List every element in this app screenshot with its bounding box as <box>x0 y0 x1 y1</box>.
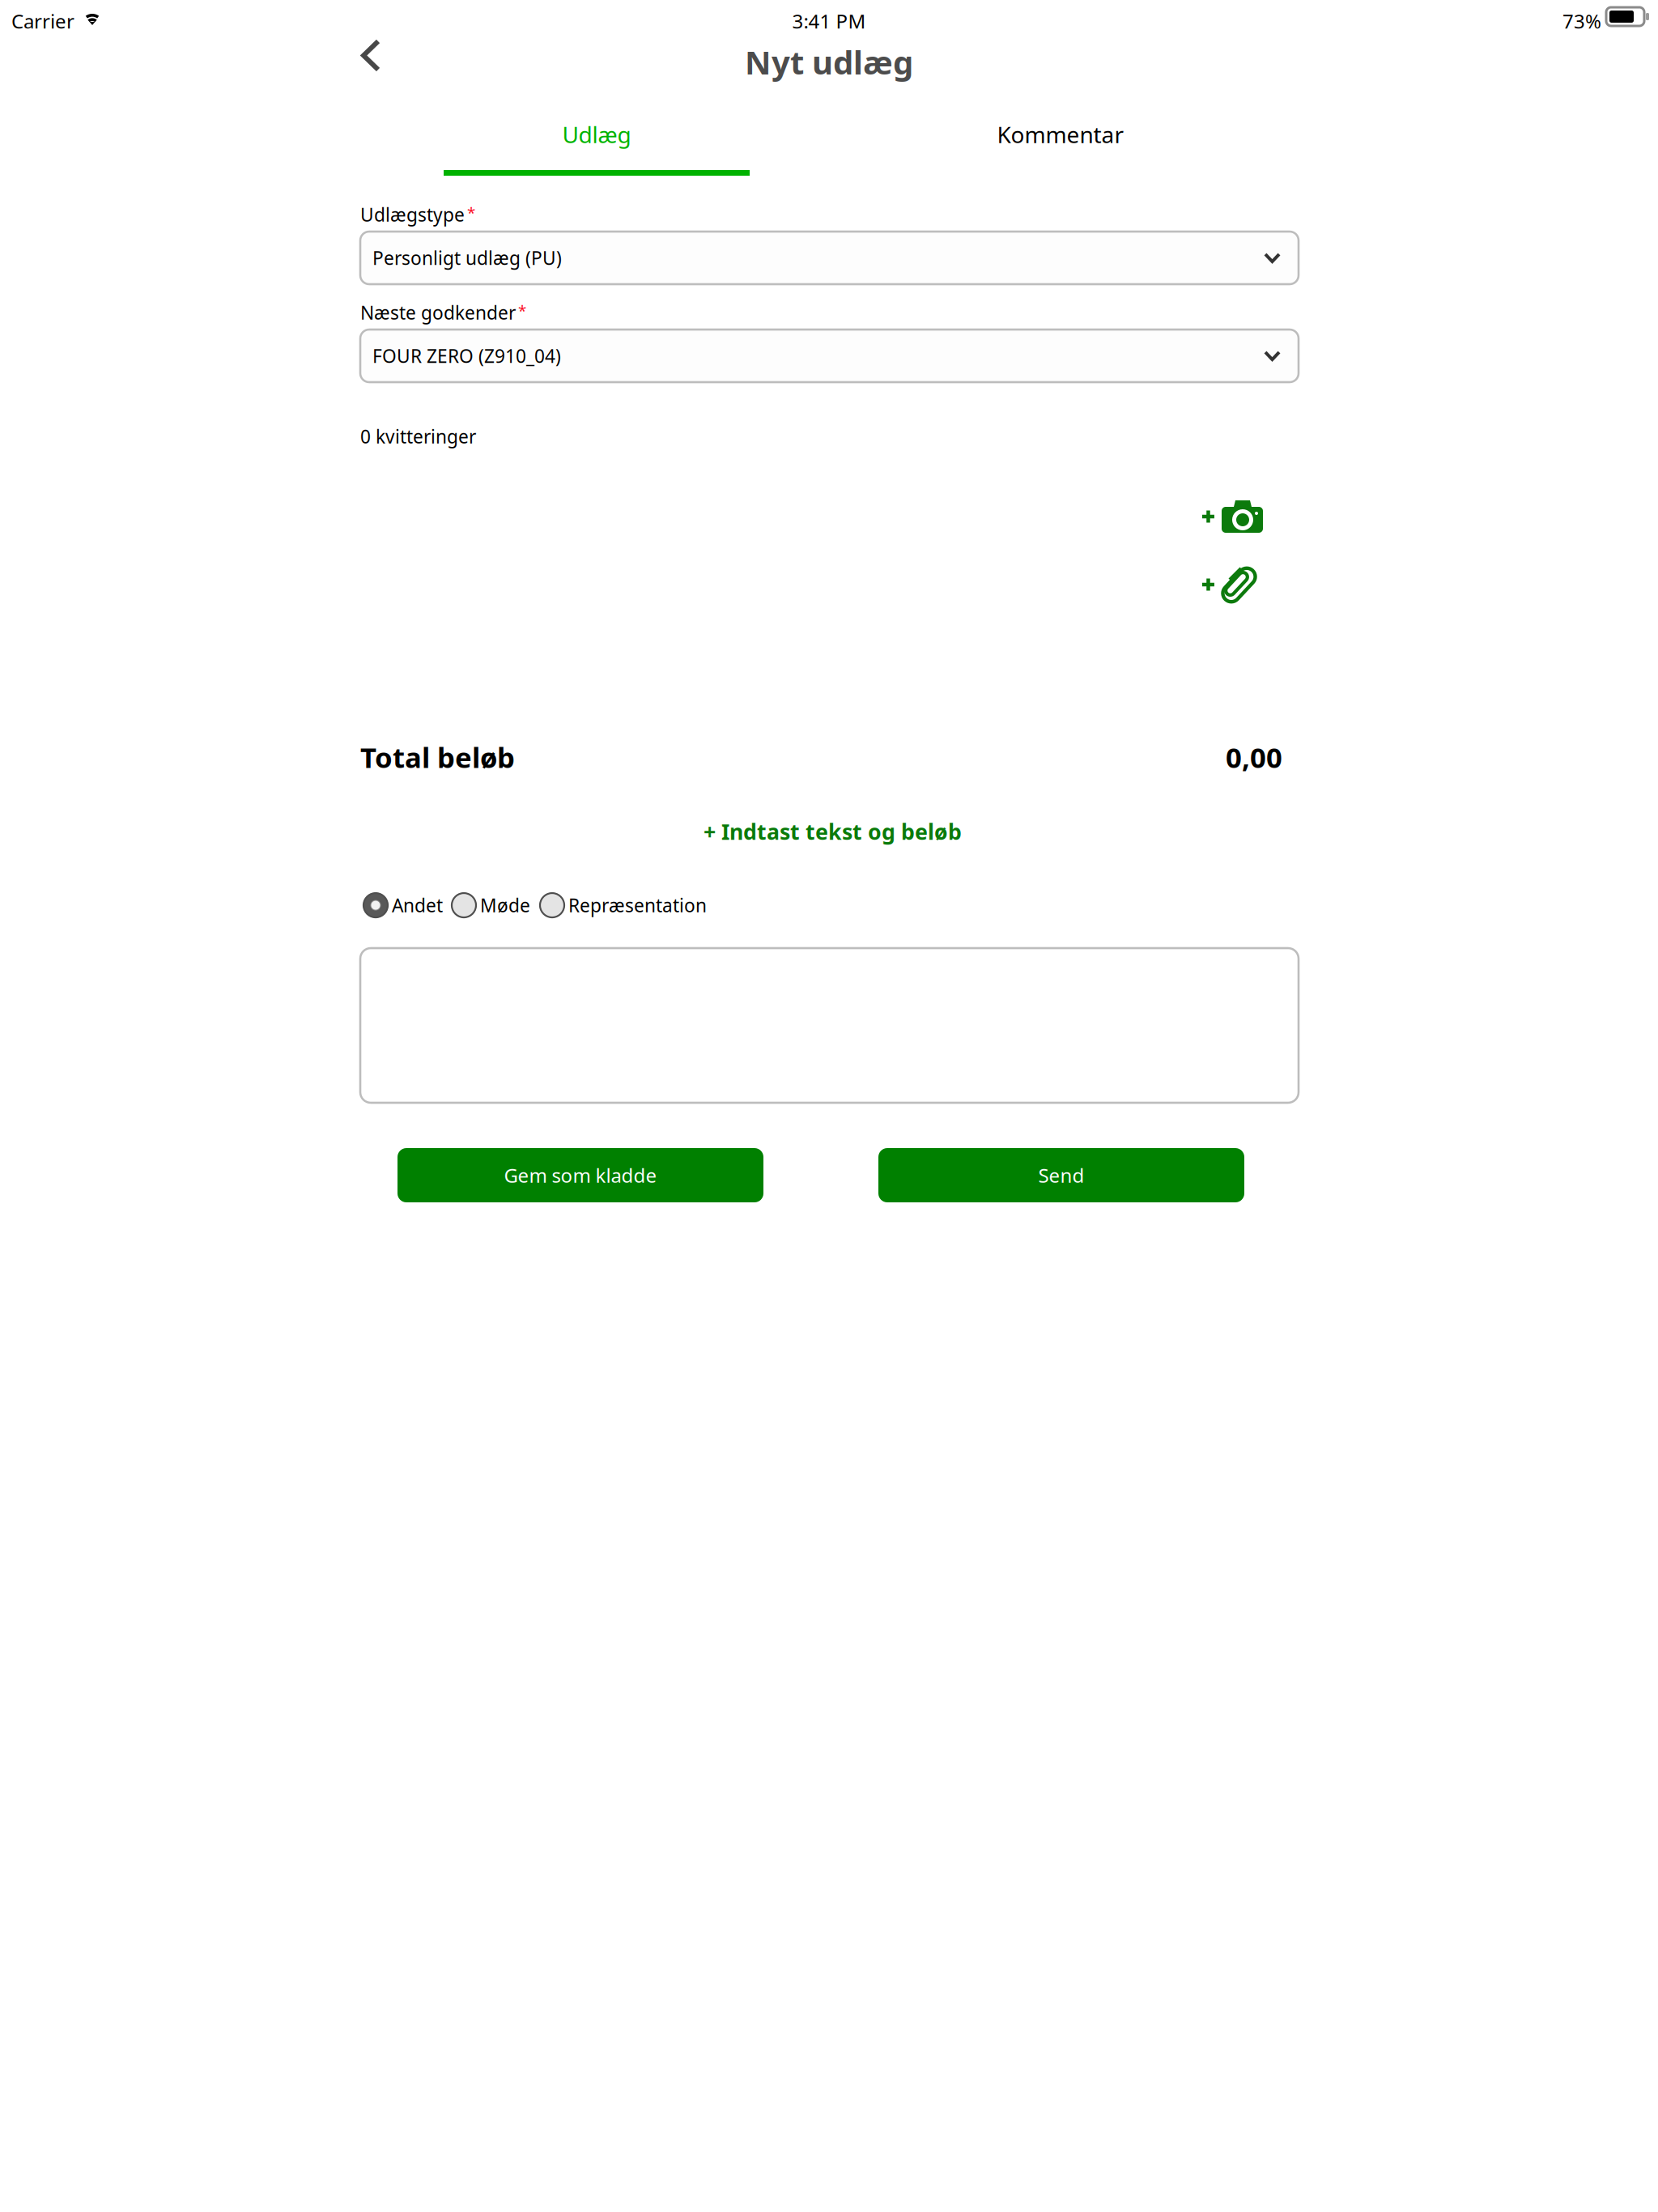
staticText: Næste godkender <box>360 300 516 325</box>
staticText: FOUR ZERO (Z910_04) <box>372 344 561 368</box>
staticText: Nyt udlæg <box>745 40 913 83</box>
staticText: Total beløb <box>360 738 515 776</box>
button[interactable]: Møde <box>452 893 530 917</box>
staticText: Personligt udlæg (PU) <box>372 246 562 270</box>
button[interactable]: Repræsentation <box>540 893 707 917</box>
staticText: Kommentar <box>997 119 1124 149</box>
staticText: * <box>518 300 526 320</box>
staticText: + Indtast tekst og beløb <box>704 817 962 846</box>
staticText: Andet <box>392 893 443 917</box>
button[interactable]: Add attachment <box>1202 567 1259 602</box>
staticText: Møde <box>480 893 530 917</box>
staticText: Gem som kladde <box>504 1162 657 1188</box>
button[interactable]: Andet <box>363 893 443 917</box>
staticText: * <box>467 202 475 222</box>
button[interactable]: Gem som kladde <box>397 1148 763 1202</box>
staticText: 0 kvitteringer <box>360 424 476 449</box>
staticText: 3:41 PM <box>792 8 866 34</box>
staticText: 73% <box>1562 8 1601 34</box>
button[interactable]: Add photo <box>1202 499 1263 534</box>
button[interactable]: Kommentar <box>908 118 1214 151</box>
staticText: Carrier <box>11 8 74 34</box>
button[interactable]: FOUR ZERO (Z910_04) <box>360 330 1299 382</box>
button[interactable]: Send <box>878 1148 1244 1202</box>
staticText: 0,00 <box>1226 738 1282 776</box>
staticText: Repræsentation <box>568 893 707 917</box>
staticText: Udlægstype <box>360 202 465 227</box>
button[interactable]: Personligt udlæg (PU) <box>360 232 1299 284</box>
button[interactable]: + Indtast tekst og beløb <box>373 819 1292 844</box>
button[interactable]: Udlæg <box>444 118 750 151</box>
staticText: Udlæg <box>562 119 631 149</box>
staticText: Send <box>1038 1162 1084 1188</box>
button[interactable]: Back <box>361 39 380 72</box>
